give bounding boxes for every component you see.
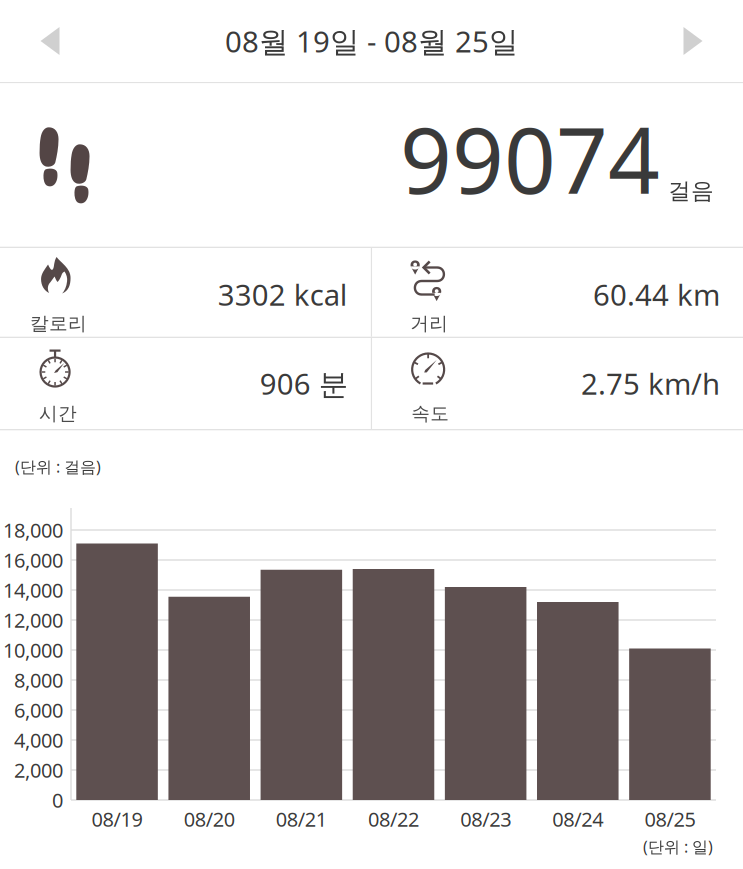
staticText: 0 [52, 787, 63, 813]
staticText: 3302 kcal [218, 275, 348, 314]
button[interactable]: 거리 [372, 248, 743, 337]
button[interactable]: 속도 [372, 338, 743, 429]
button[interactable]: Next week [643, 0, 743, 82]
staticText: 칼로리 [30, 312, 87, 335]
staticText: 18,000 [3, 517, 63, 543]
staticText: 08/19 [92, 806, 143, 832]
button[interactable]: 칼로리 [0, 248, 371, 337]
staticText: 08/24 [552, 806, 603, 832]
staticText: 08/23 [460, 806, 511, 832]
staticText: (단위 : 걸음) [15, 456, 101, 477]
staticText: 속도 [411, 402, 449, 425]
staticText: 08/21 [276, 806, 327, 832]
button[interactable]: Previous week [0, 0, 100, 82]
staticText: 6,000 [14, 697, 63, 723]
staticText: 08/20 [184, 806, 235, 832]
staticText: (단위 : 일) [643, 836, 713, 857]
staticText: 시간 [39, 402, 77, 425]
staticText: 12,000 [3, 607, 63, 633]
button[interactable]: 시간 [0, 338, 371, 429]
staticText: 걸음 [668, 177, 714, 205]
staticText: 14,000 [3, 577, 63, 603]
staticText: 99074 [400, 98, 660, 219]
staticText: 08/22 [368, 806, 419, 832]
staticText: 거리 [410, 312, 448, 335]
staticText: 4,000 [14, 727, 63, 753]
staticText: 8,000 [14, 667, 63, 693]
staticText: 2.75 km/h [581, 364, 720, 403]
staticText: 60.44 km [593, 275, 720, 314]
staticText: 08/25 [644, 806, 695, 832]
staticText: 906 분 [260, 364, 348, 403]
staticText: 16,000 [3, 547, 63, 573]
staticText: 08월 19일 - 08월 25일 [225, 21, 518, 60]
staticText: 2,000 [14, 757, 63, 783]
staticText: 10,000 [3, 637, 63, 663]
